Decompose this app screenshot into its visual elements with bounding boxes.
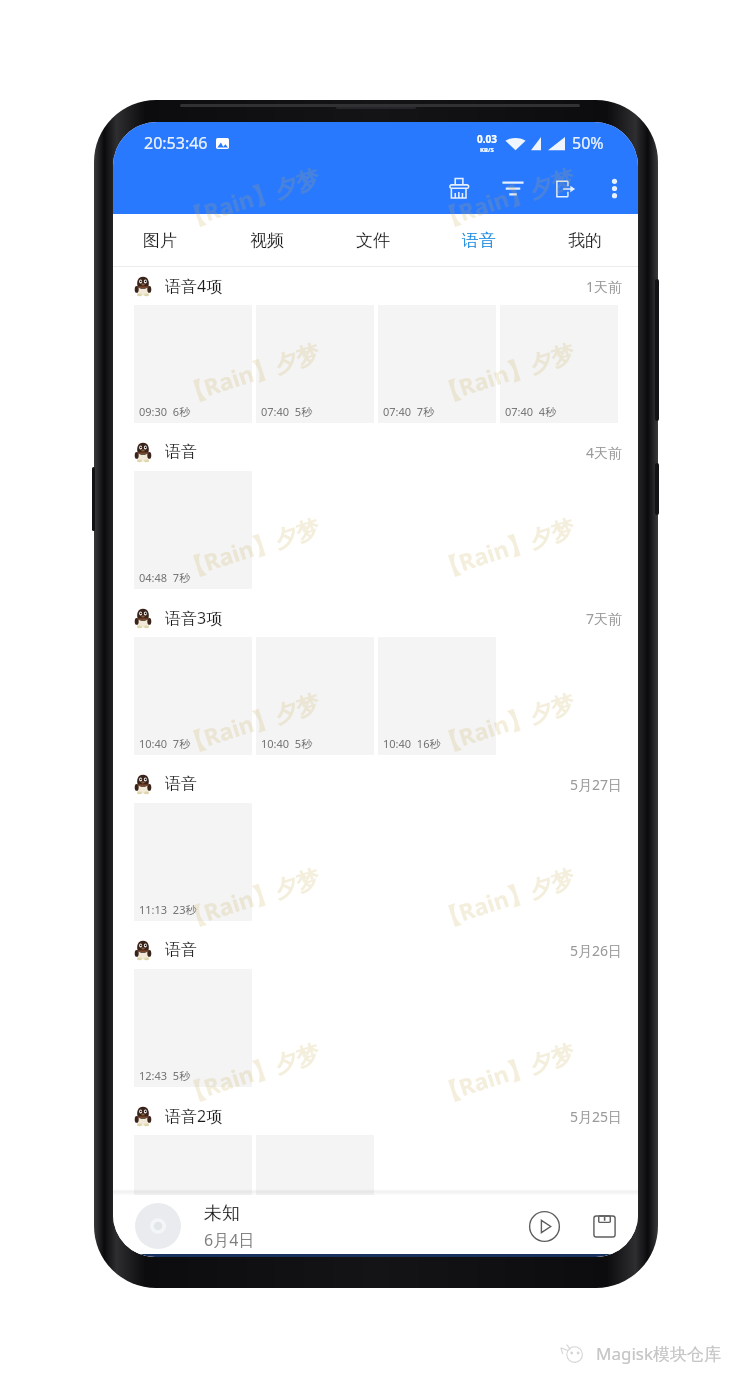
button[interactable] xyxy=(256,1135,374,1253)
button[interactable]: 视频 xyxy=(213,214,320,266)
staticText: 【Rain】夕梦 xyxy=(178,686,323,759)
staticText: 12:43 5秒 xyxy=(139,1068,191,1083)
button[interactable]: Export xyxy=(545,167,587,209)
button[interactable]: Clean xyxy=(439,167,481,209)
staticText: 视频 xyxy=(250,230,284,251)
staticText: 语音4项 xyxy=(165,275,223,297)
staticText: 07:40 5秒 xyxy=(261,404,313,419)
staticText: Magisk模块仓库 xyxy=(596,1342,722,1365)
staticText: 50% xyxy=(572,132,604,154)
staticText: 10:40 5秒 xyxy=(261,736,313,751)
staticText: 【Rain】夕梦 xyxy=(433,1211,578,1257)
staticText: 【Rain】夕梦 xyxy=(178,161,323,234)
staticText: 10:40 16秒 xyxy=(383,736,441,751)
staticText: 5月27日 xyxy=(570,775,623,794)
staticText: 5月26日 xyxy=(570,941,623,960)
staticText: 【Rain】夕梦 xyxy=(178,511,323,584)
staticText: 【Rain】夕梦 xyxy=(178,336,323,409)
button[interactable]: 10:40 16秒 xyxy=(378,637,496,755)
button[interactable]: Play xyxy=(523,1205,565,1247)
staticText: 09:30 6秒 xyxy=(139,404,191,419)
staticText: 【Rain】夕梦 xyxy=(433,336,578,409)
staticText: 【Rain】夕梦 xyxy=(178,861,323,934)
button[interactable]: 07:40 5秒 xyxy=(256,305,374,423)
button[interactable]: More options xyxy=(593,167,635,209)
button[interactable]: 09:30 6秒 xyxy=(134,305,252,423)
staticText: 6月4日 xyxy=(204,1229,255,1251)
staticText: 【Rain】夕梦 xyxy=(433,1036,578,1109)
button[interactable]: 11:13 23秒 xyxy=(134,803,252,921)
staticText: 未知 xyxy=(204,1202,240,1225)
staticText: 4天前 xyxy=(586,443,623,462)
staticText: 7天前 xyxy=(586,609,623,628)
staticText: 20:53:46 xyxy=(144,132,208,154)
button[interactable]: 图片 xyxy=(113,214,213,266)
staticText: 1天前 xyxy=(586,277,623,296)
staticText: 语音 xyxy=(165,940,197,960)
button[interactable]: Filter xyxy=(492,167,534,209)
button[interactable]: 07:40 7秒 xyxy=(378,305,496,423)
staticText: 语音 xyxy=(462,230,496,251)
button[interactable]: 04:48 7秒 xyxy=(134,471,252,589)
staticText: KB/S xyxy=(480,146,494,154)
button[interactable]: 语音 xyxy=(426,214,532,266)
staticText: 0.03 xyxy=(477,132,497,146)
staticText: 【Rain】夕梦 xyxy=(433,686,578,759)
staticText: 10:40 7秒 xyxy=(139,736,191,751)
staticText: 07:40 4秒 xyxy=(505,404,557,419)
button[interactable] xyxy=(134,1135,252,1253)
button[interactable]: 10:40 5秒 xyxy=(256,637,374,755)
button[interactable]: 我的 xyxy=(532,214,638,266)
staticText: 【Rain】夕梦 xyxy=(433,861,578,934)
button[interactable]: Save xyxy=(587,1209,621,1243)
button[interactable]: 07:40 4秒 xyxy=(500,305,618,423)
staticText: 【Rain】夕梦 xyxy=(433,161,578,234)
button[interactable]: 12:43 5秒 xyxy=(134,969,252,1087)
staticText: 文件 xyxy=(356,230,390,251)
staticText: 【Rain】夕梦 xyxy=(178,1211,323,1257)
staticText: 【Rain】夕梦 xyxy=(433,511,578,584)
button[interactable]: 文件 xyxy=(320,214,426,266)
staticText: 语音 xyxy=(165,774,197,794)
staticText: 图片 xyxy=(143,230,177,251)
staticText: 04:48 7秒 xyxy=(139,570,191,585)
button[interactable]: 10:40 7秒 xyxy=(134,637,252,755)
staticText: 11:13 23秒 xyxy=(139,902,197,917)
staticText: 【Rain】夕梦 xyxy=(178,1036,323,1109)
staticText: 语音2项 xyxy=(165,1105,223,1127)
staticText: 语音 xyxy=(165,442,197,462)
staticText: 我的 xyxy=(568,230,602,251)
staticText: 07:40 7秒 xyxy=(383,404,435,419)
staticText: 5月25日 xyxy=(570,1107,623,1126)
staticText: 语音3项 xyxy=(165,607,223,629)
